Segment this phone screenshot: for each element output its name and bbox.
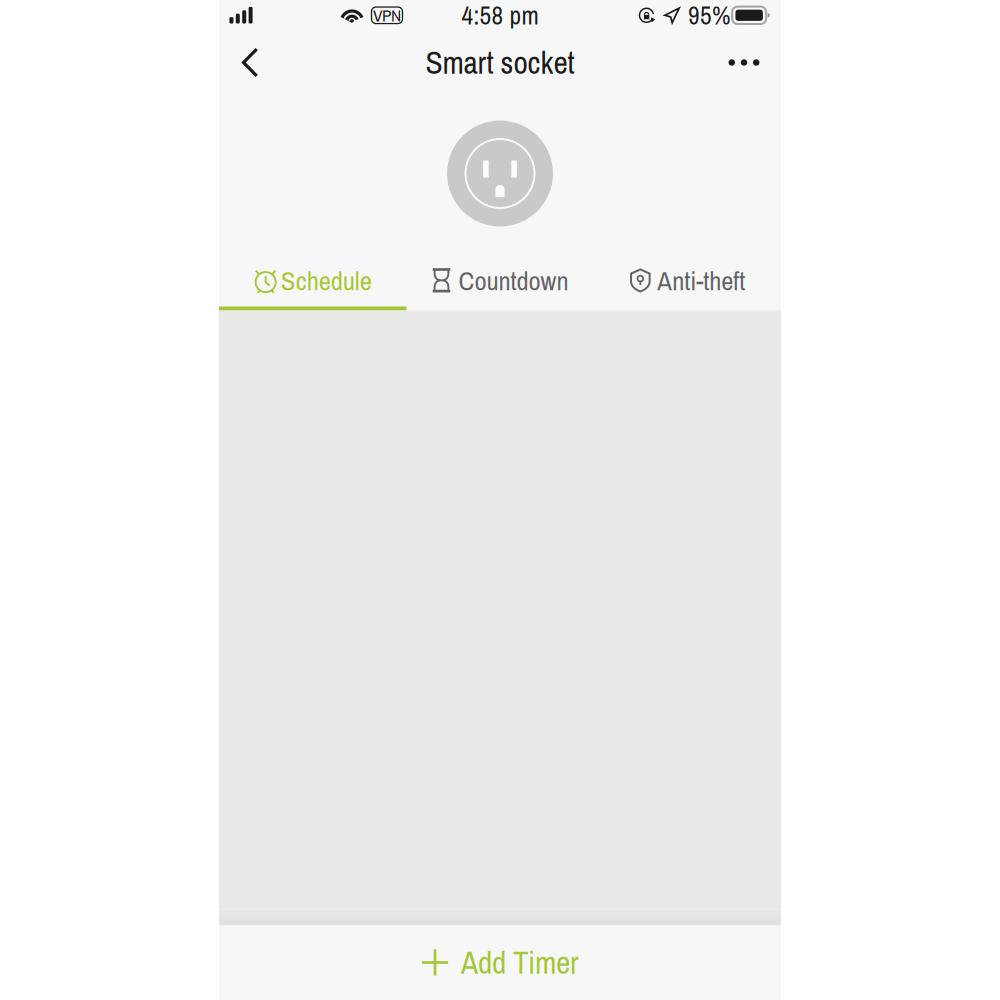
- staticText: Add Timer: [461, 941, 579, 984]
- button[interactable]: Back: [222, 34, 278, 90]
- button[interactable]: Countdown: [406, 250, 594, 310]
- button[interactable]: Schedule: [219, 250, 406, 310]
- staticText: Countdown: [458, 262, 568, 298]
- button[interactable]: More options: [716, 34, 772, 90]
- staticText: Anti-theft: [657, 262, 745, 298]
- staticText: Schedule: [281, 262, 372, 298]
- button[interactable]: Anti-theft: [594, 250, 781, 310]
- button[interactable]: Add Timer: [219, 925, 781, 999]
- staticText: VPN: [373, 4, 401, 27]
- staticText: 4:58 pm: [461, 0, 538, 32]
- staticText: Smart socket: [425, 41, 574, 84]
- staticText: 95%: [688, 0, 730, 32]
